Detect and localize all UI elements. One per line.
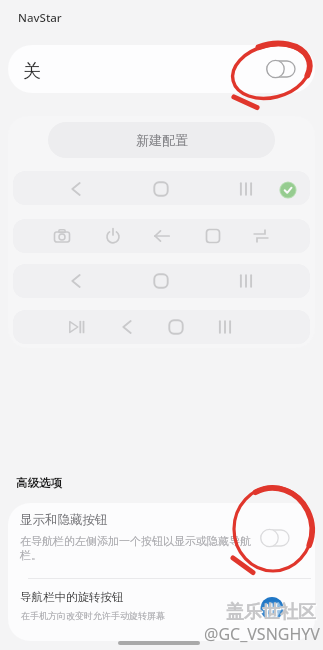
staticText: 盖乐世社区 xyxy=(227,602,317,625)
staticText: 导航栏中的旋转按钮 xyxy=(20,590,124,604)
staticText: 盖乐世社区 xyxy=(226,601,316,624)
staticText: 高级选项 xyxy=(16,476,62,490)
staticText: NavStar xyxy=(18,10,62,26)
staticText: 在手机方向改变时允许手动旋转屏幕 xyxy=(21,610,165,621)
button[interactable] xyxy=(8,579,315,641)
button[interactable] xyxy=(13,219,310,253)
button[interactable]: 新建配置 xyxy=(48,122,275,158)
button[interactable] xyxy=(13,171,310,205)
staticText: 栏。 xyxy=(20,548,42,562)
button[interactable] xyxy=(252,524,298,552)
button[interactable] xyxy=(8,503,315,577)
button[interactable] xyxy=(13,310,310,344)
button[interactable] xyxy=(13,264,310,298)
staticText: 新建配置 xyxy=(136,132,188,148)
staticText: 显示和隐藏按钮 xyxy=(20,512,108,528)
staticText: 在导航栏的左侧添加一个按钮以显示或隐藏导航 xyxy=(20,534,251,548)
button[interactable]: 关 xyxy=(8,45,315,93)
staticText: @GC_VSNGHYV xyxy=(204,623,320,645)
staticText: 关 xyxy=(23,60,41,83)
button[interactable] xyxy=(258,55,304,83)
